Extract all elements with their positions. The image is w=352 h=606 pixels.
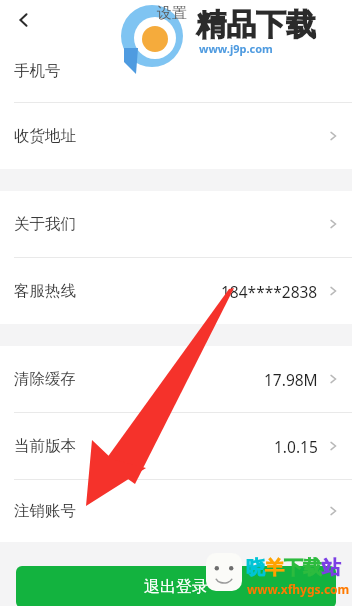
button[interactable]: 收货地址: [0, 103, 352, 169]
button[interactable]: 当前版本: [0, 413, 352, 480]
staticText: 精品下载: [196, 6, 316, 44]
staticText: 晓: [246, 556, 265, 580]
staticText: 站: [322, 556, 341, 580]
staticText: www.xfhygs.com: [247, 581, 350, 597]
button[interactable]: 退出登录: [16, 566, 336, 606]
button[interactable]: 手机号: [0, 40, 352, 103]
staticText: 下: [284, 556, 303, 580]
button[interactable]: 关于我们: [0, 191, 352, 258]
staticText: 17.98M: [264, 369, 318, 390]
staticText: 清除缓存: [14, 369, 76, 389]
staticText: 1.0.15: [274, 436, 318, 457]
button[interactable]: 客服热线: [0, 258, 352, 324]
staticText: 客服热线: [14, 281, 76, 301]
button[interactable]: Back: [6, 2, 42, 38]
button[interactable]: 注销账号: [0, 480, 352, 542]
staticText: 注销账号: [14, 501, 76, 521]
staticText: www.j9p.com: [199, 41, 273, 56]
staticText: 载: [303, 556, 322, 580]
staticText: 羊: [265, 556, 284, 580]
button[interactable]: 清除缓存: [0, 346, 352, 413]
staticText: 手机号: [14, 61, 61, 81]
staticText: 当前版本: [14, 436, 76, 456]
staticText: 设置: [157, 4, 187, 23]
staticText: 退出登录: [144, 577, 208, 597]
staticText: 收货地址: [14, 126, 76, 146]
staticText: 关于我们: [14, 214, 76, 234]
staticText: 184****2838: [221, 281, 318, 302]
